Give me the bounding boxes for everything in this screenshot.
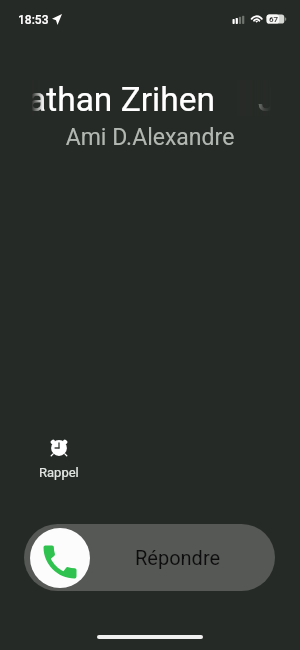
button[interactable]: Rappel	[37, 430, 81, 480]
staticText: Jonathan Zrihen	[258, 80, 300, 116]
other: Battery 67 percent	[266, 14, 287, 25]
staticText: athan Zrihen	[28, 80, 215, 116]
staticText: 67	[269, 15, 279, 24]
staticText: 18:53	[18, 13, 49, 27]
staticText: Répondre	[135, 546, 221, 569]
other: Cellular signal	[232, 15, 245, 24]
button[interactable]: Répondre	[24, 524, 275, 591]
other: Location	[52, 14, 62, 25]
other: Wi-Fi	[250, 13, 264, 23]
staticText: Rappel	[39, 465, 79, 480]
staticText: Ami D.Alexandre	[0, 124, 300, 151]
other: Answer call	[30, 528, 90, 588]
